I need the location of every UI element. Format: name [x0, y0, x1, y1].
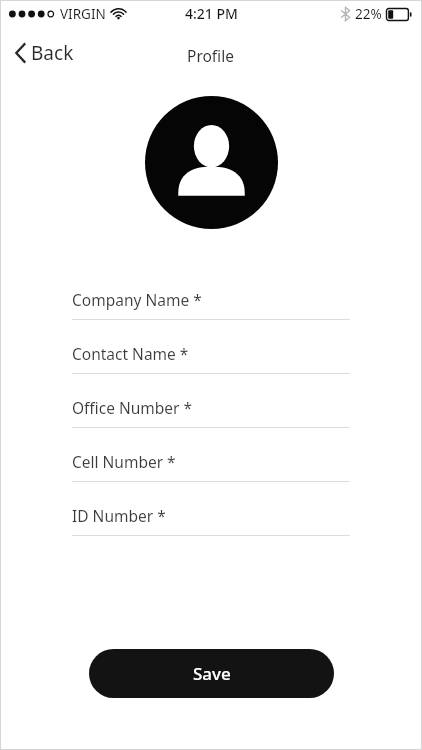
- staticText: Office Number *: [72, 397, 193, 418]
- staticText: Contact Name *: [72, 343, 189, 364]
- staticText: Cell Number *: [72, 451, 176, 472]
- staticText: Back: [31, 40, 74, 66]
- button[interactable]: Office Number *: [72, 388, 350, 428]
- button[interactable]: Cell Number *: [72, 442, 350, 482]
- button[interactable]: Contact Name *: [72, 334, 350, 374]
- staticText: 22%: [355, 5, 382, 23]
- button[interactable]: Company Name *: [72, 280, 350, 320]
- staticText: 4:21 PM: [185, 4, 238, 23]
- button[interactable]: ID Number *: [72, 496, 350, 536]
- staticText: Profile: [187, 45, 234, 66]
- staticText: VIRGIN: [60, 5, 106, 23]
- staticText: Company Name *: [72, 289, 202, 310]
- button[interactable]: Save: [89, 649, 334, 698]
- staticText: Save: [193, 662, 231, 685]
- button[interactable]: Back: [0, 34, 88, 72]
- staticText: ID Number *: [72, 505, 166, 526]
